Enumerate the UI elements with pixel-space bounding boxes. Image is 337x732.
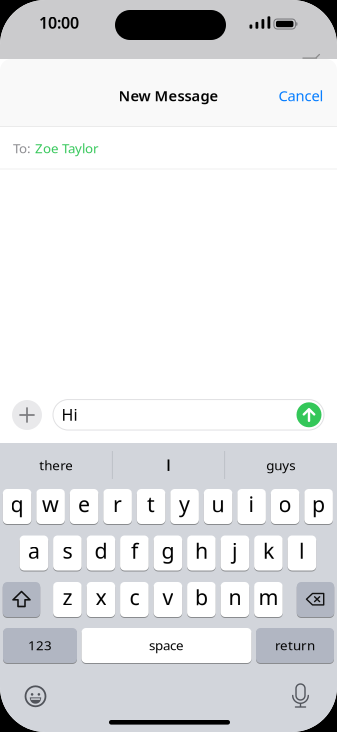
- staticText: g: [161, 536, 174, 565]
- staticText: 123: [28, 636, 52, 654]
- button[interactable]: there: [1, 445, 111, 485]
- button[interactable]: z: [0, 0, 337, 732]
- staticText: return: [275, 636, 315, 654]
- staticText: i: [249, 490, 255, 518]
- staticText: d: [94, 536, 107, 565]
- button[interactable]: guys: [226, 445, 336, 485]
- staticText: t: [147, 490, 155, 518]
- button[interactable]: j: [0, 0, 337, 732]
- staticText: q: [11, 490, 24, 518]
- staticText: r: [113, 490, 122, 518]
- button[interactable]: b: [0, 0, 337, 732]
- button[interactable]: p: [0, 0, 337, 732]
- staticText: b: [195, 583, 208, 611]
- staticText: there: [39, 456, 73, 474]
- staticText: x: [95, 583, 106, 611]
- staticText: Hi: [61, 404, 77, 425]
- button[interactable]: Cancel: [278, 86, 323, 105]
- button[interactable]: g: [0, 0, 337, 732]
- staticText: z: [62, 583, 72, 611]
- button[interactable]: i: [0, 0, 337, 732]
- staticText: j: [232, 536, 238, 565]
- staticText: space: [149, 636, 184, 654]
- button[interactable]: n: [0, 0, 337, 732]
- staticText: Zoe Taylor: [35, 139, 99, 157]
- staticText: u: [212, 490, 225, 518]
- button[interactable]: [292, 684, 308, 708]
- button[interactable]: u: [0, 0, 337, 732]
- button[interactable]: a: [0, 0, 337, 732]
- staticText: To:: [13, 139, 31, 157]
- button[interactable]: e: [0, 0, 337, 732]
- button[interactable]: x: [0, 0, 337, 732]
- staticText: Cancel: [278, 86, 323, 105]
- button[interactable]: m: [0, 0, 337, 732]
- staticText: h: [195, 536, 208, 565]
- button[interactable]: 123: [0, 0, 337, 732]
- button[interactable]: t: [0, 0, 337, 732]
- button[interactable]: q: [0, 0, 337, 732]
- button[interactable]: [113, 445, 223, 485]
- button[interactable]: space: [0, 0, 337, 732]
- button[interactable]: Hi: [53, 400, 324, 430]
- button[interactable]: l: [0, 0, 337, 732]
- button[interactable]: w: [0, 0, 337, 732]
- button[interactable]: [0, 0, 337, 732]
- staticText: l: [299, 536, 305, 565]
- staticText: p: [312, 490, 325, 518]
- staticText: c: [129, 583, 139, 611]
- button[interactable]: [12, 400, 42, 430]
- staticText: y: [179, 490, 190, 518]
- staticText: v: [162, 583, 173, 611]
- button[interactable]: [296, 402, 321, 427]
- button[interactable]: r: [0, 0, 337, 732]
- staticText: a: [28, 536, 40, 565]
- staticText: f: [131, 536, 138, 565]
- button[interactable]: s: [0, 0, 337, 732]
- button[interactable]: h: [0, 0, 337, 732]
- button[interactable]: o: [0, 0, 337, 732]
- button[interactable]: To:: [0, 127, 337, 169]
- staticText: s: [62, 536, 72, 565]
- staticText: New Message: [118, 86, 218, 105]
- button[interactable]: y: [0, 0, 337, 732]
- button[interactable]: c: [0, 0, 337, 732]
- staticText: 10:00: [39, 12, 79, 33]
- staticText: k: [263, 536, 274, 565]
- button[interactable]: return: [0, 0, 337, 732]
- button[interactable]: d: [0, 0, 337, 732]
- staticText: w: [42, 490, 59, 518]
- staticText: e: [78, 490, 90, 518]
- button[interactable]: k: [0, 0, 337, 732]
- staticText: n: [228, 583, 241, 611]
- staticText: o: [279, 490, 292, 518]
- button[interactable]: [25, 686, 46, 707]
- button[interactable]: v: [0, 0, 337, 732]
- button[interactable]: f: [0, 0, 337, 732]
- button[interactable]: [0, 0, 337, 732]
- staticText: m: [258, 583, 278, 611]
- staticText: guys: [266, 456, 295, 474]
